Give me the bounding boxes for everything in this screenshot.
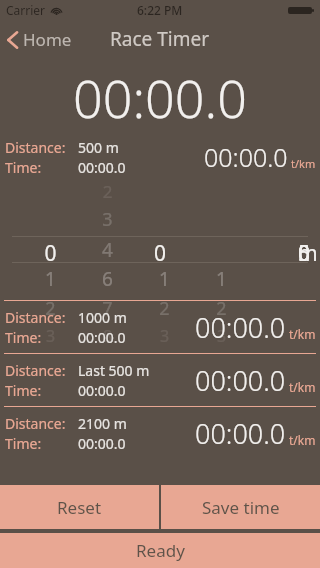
staticText: Time:: [5, 158, 78, 177]
staticText: 6: [79, 266, 136, 292]
staticText: Reset: [57, 496, 102, 519]
staticText: Race Timer: [110, 26, 210, 52]
button[interactable]: Distance:: [0, 407, 320, 459]
staticText: t/km: [289, 379, 316, 395]
staticText: Carrier: [6, 2, 46, 18]
staticText: Distance:: [5, 138, 78, 157]
button[interactable]: Save time: [161, 485, 320, 529]
staticText: 500 m: [78, 138, 119, 157]
staticText: 00:00.0: [195, 309, 286, 346]
button[interactable]: Distance:: [0, 354, 320, 406]
staticText: Distance:: [5, 414, 78, 433]
staticText: 00:00.0: [195, 362, 286, 399]
staticText: 00:00.0: [204, 140, 288, 174]
staticText: 1: [136, 266, 193, 292]
staticText: 7: [79, 296, 136, 321]
staticText: Ready: [136, 539, 185, 562]
staticText: 2: [193, 296, 250, 321]
staticText: t/km: [289, 432, 316, 448]
button[interactable]: Ready: [0, 533, 320, 568]
staticText: 2: [22, 296, 79, 321]
staticText: 00:00.0: [78, 381, 126, 400]
staticText: Time:: [5, 381, 78, 400]
staticText: 00:00.0: [78, 158, 126, 177]
staticText: 2: [136, 296, 193, 321]
staticText: 1000 m: [78, 308, 127, 327]
staticText: 00:00.0: [73, 62, 247, 133]
staticText: 00:00.0: [195, 415, 286, 452]
staticText: 0: [22, 239, 298, 268]
staticText: 1: [22, 266, 79, 292]
staticText: Last 500 m: [78, 361, 150, 380]
staticText: t/km: [289, 326, 316, 342]
button[interactable]: Home: [0, 24, 80, 55]
staticText: Distance:: [5, 308, 78, 327]
staticText: 3: [22, 325, 79, 347]
staticText: Save time: [202, 496, 280, 519]
staticText: 6:22 PM: [137, 2, 183, 18]
staticText: 3: [193, 325, 250, 347]
staticText: 8: [79, 325, 136, 347]
staticText: Time:: [5, 434, 78, 453]
staticText: Home: [23, 28, 72, 51]
staticText: 3: [79, 207, 136, 232]
staticText: 00:00.0: [78, 328, 126, 347]
button[interactable]: 2: [0, 178, 320, 300]
staticText: Distance:: [5, 361, 78, 380]
staticText: Time:: [5, 328, 78, 347]
staticText: 1: [193, 266, 250, 292]
button[interactable]: Distance:: [0, 301, 320, 353]
staticText: 4: [79, 237, 136, 263]
button[interactable]: Reset: [0, 485, 159, 529]
staticText: 00:00.0: [78, 434, 126, 453]
staticText: t/km: [291, 156, 316, 171]
staticText: 0: [22, 239, 79, 268]
staticText: 2100 m: [78, 414, 127, 433]
